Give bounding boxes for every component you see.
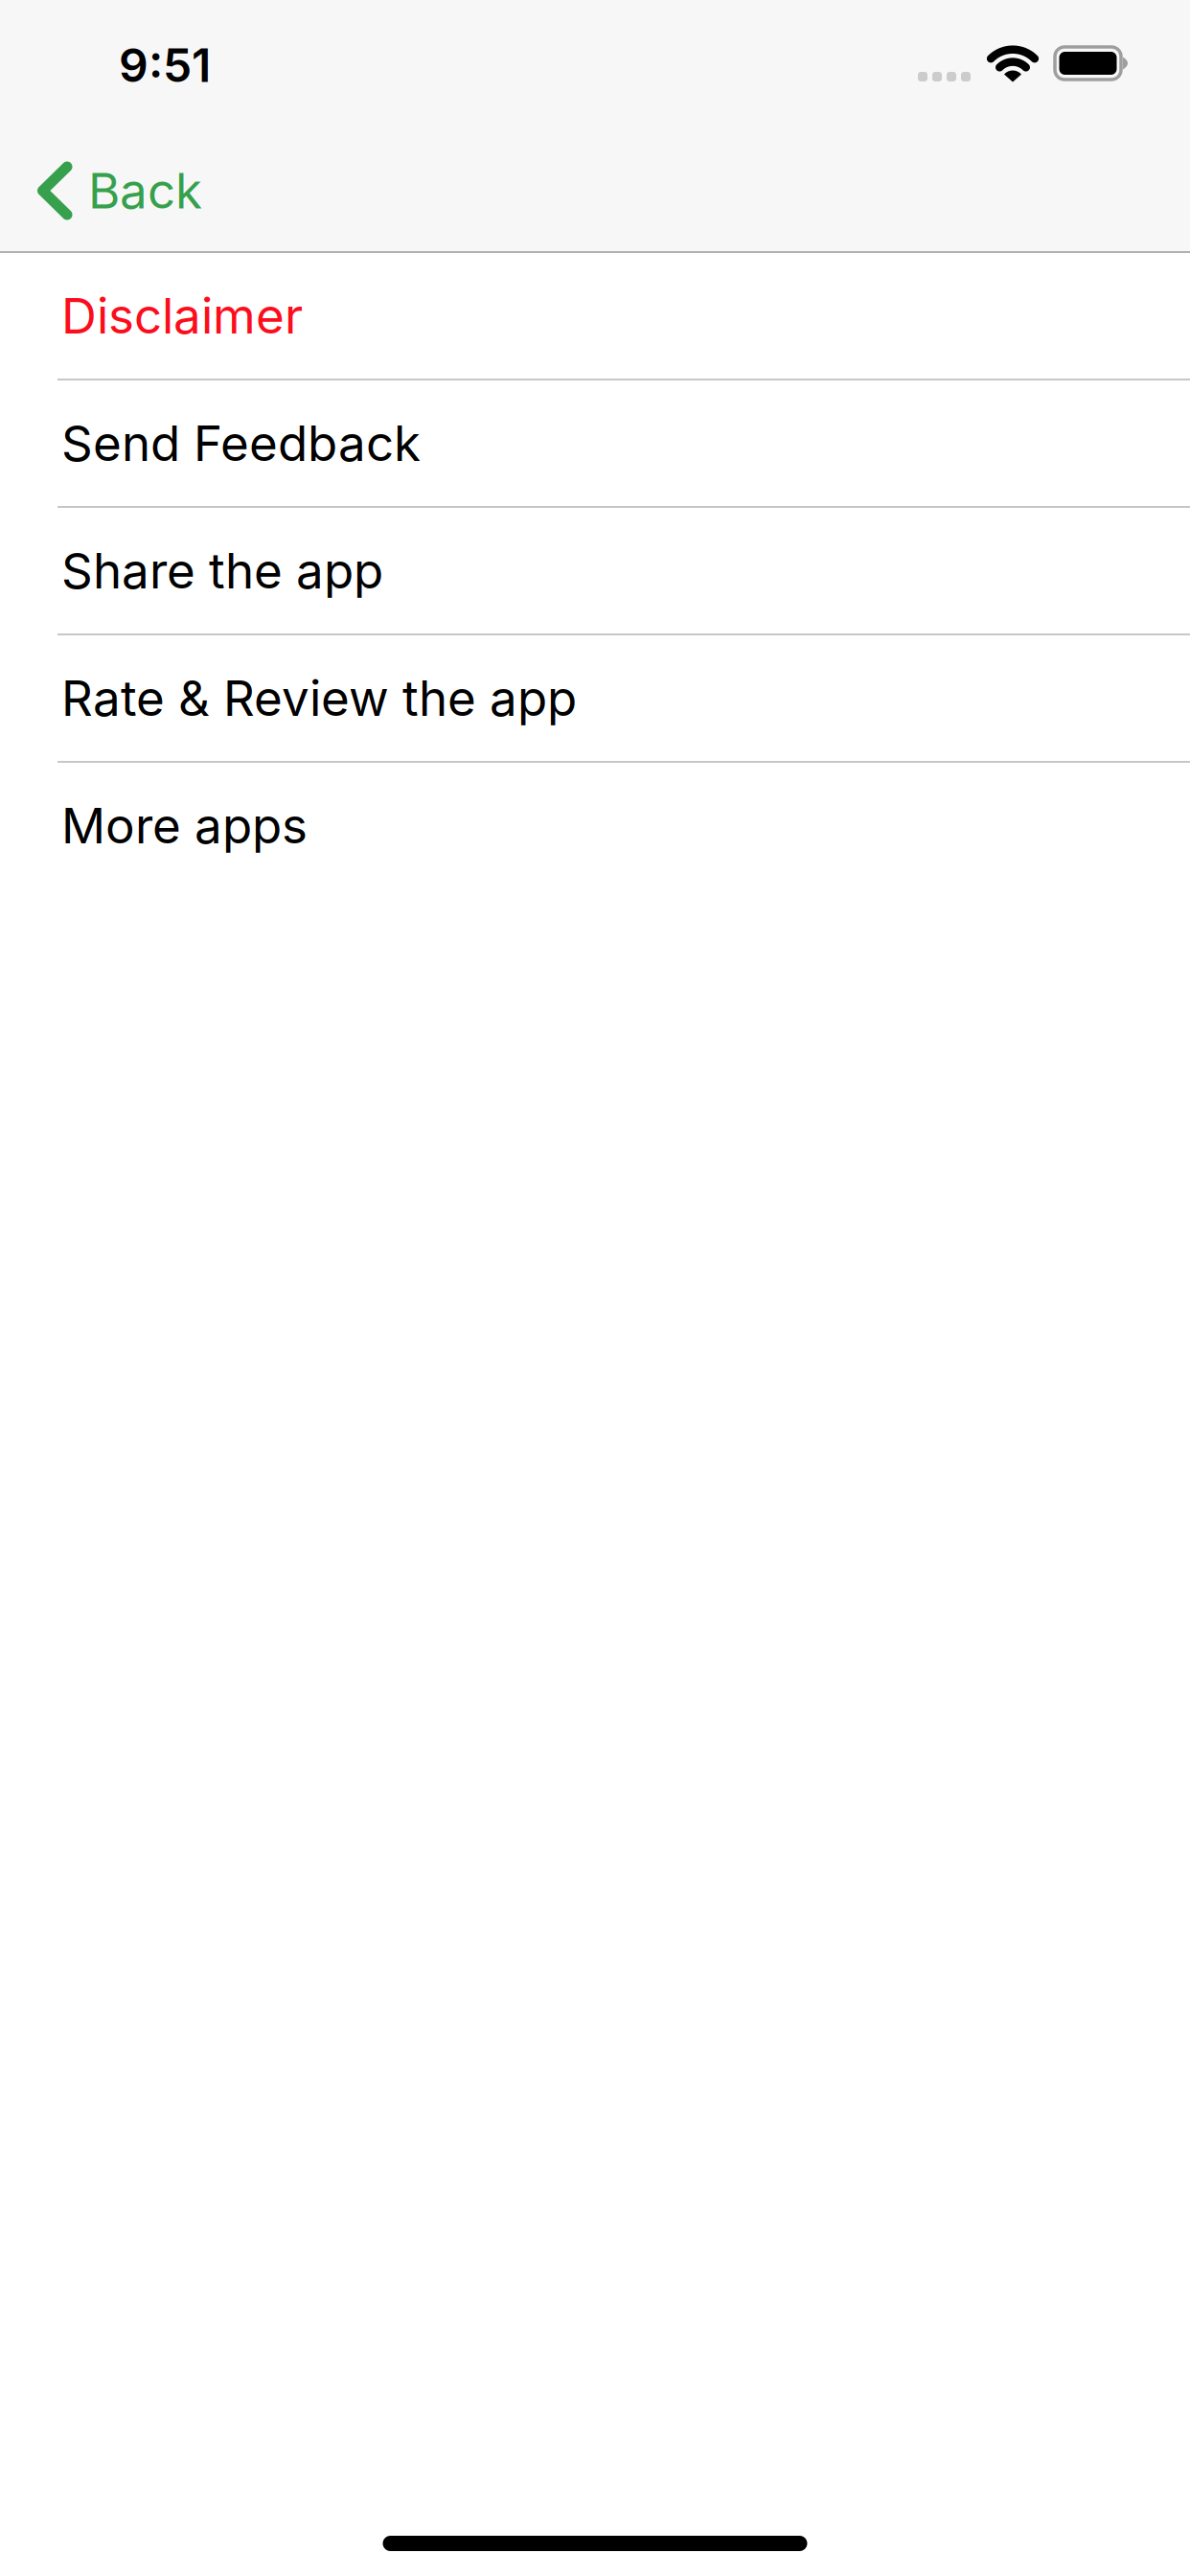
staticText: Send Feedback <box>61 414 421 473</box>
staticText: Share the app <box>61 541 383 600</box>
staticText: Rate & Review the app <box>61 669 577 728</box>
button[interactable]: Send Feedback <box>0 380 1190 506</box>
button[interactable]: More apps <box>0 763 1190 888</box>
staticText: Disclaimer <box>61 286 303 345</box>
button[interactable]: Back <box>0 157 202 220</box>
button[interactable]: Disclaimer <box>0 253 1190 379</box>
staticText: 9:51 <box>119 37 211 93</box>
button[interactable]: Rate & Review the app <box>0 635 1190 761</box>
button[interactable]: Share the app <box>0 508 1190 633</box>
staticText: More apps <box>61 796 308 855</box>
staticText: Back <box>88 161 202 220</box>
